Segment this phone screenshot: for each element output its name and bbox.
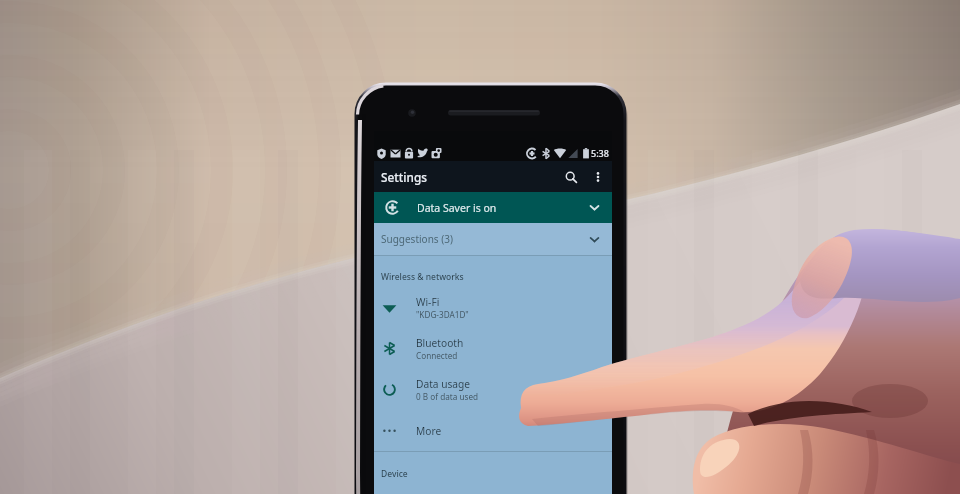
staticText: "KDG-3DA1D" xyxy=(416,309,469,320)
button[interactable]: More xyxy=(374,410,612,451)
staticText: 5:38 xyxy=(591,147,609,159)
button[interactable]: Data usage xyxy=(374,369,612,410)
staticText: Wireless & networks xyxy=(381,271,464,283)
button[interactable]: More options xyxy=(585,164,611,190)
button[interactable]: Suggestions (3) xyxy=(374,223,612,255)
staticText: Data usage xyxy=(416,377,471,391)
staticText: Suggestions (3) xyxy=(381,232,453,246)
button[interactable]: Search xyxy=(557,163,585,191)
button[interactable]: Wi-Fi xyxy=(374,287,612,328)
staticText: 0 B of data used xyxy=(416,391,479,402)
button[interactable]: Data Saver is on xyxy=(374,192,612,223)
staticText: Data Saver is on xyxy=(417,201,497,215)
staticText: More xyxy=(416,424,442,438)
staticText: Connected xyxy=(416,350,458,361)
button[interactable]: Bluetooth xyxy=(374,328,612,369)
staticText: Settings xyxy=(381,169,427,185)
staticText: Device xyxy=(381,468,408,480)
staticText: Wi-Fi xyxy=(416,295,440,309)
staticText: Bluetooth xyxy=(416,336,464,350)
